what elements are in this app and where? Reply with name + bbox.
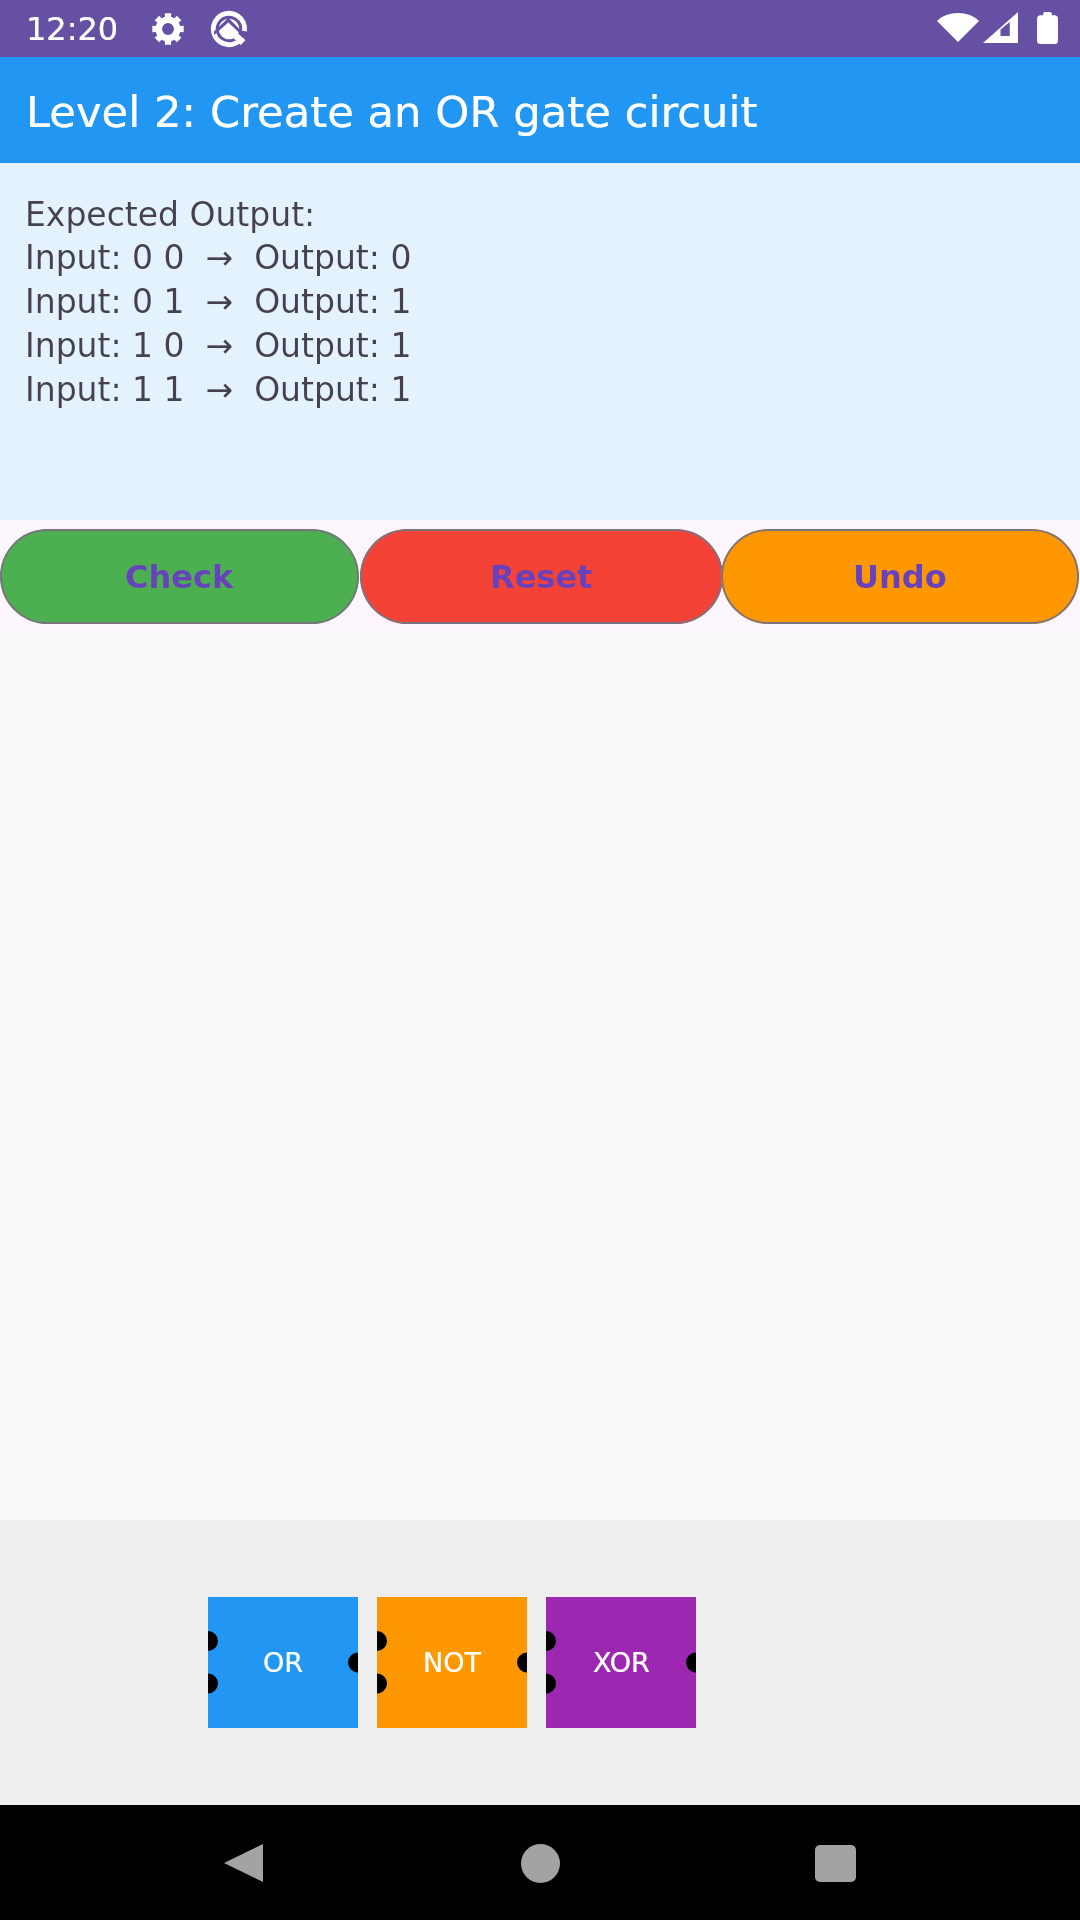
staticText: Reset bbox=[490, 558, 593, 595]
staticText: OR bbox=[263, 1647, 304, 1678]
button[interactable]: Undo bbox=[721, 529, 1079, 624]
button[interactable]: Check bbox=[0, 529, 359, 624]
button[interactable]: Home bbox=[500, 1843, 580, 1883]
button[interactable]: NOT bbox=[377, 1597, 527, 1728]
staticText: Input: 1 1 → Output: 1 bbox=[25, 370, 412, 408]
button[interactable]: OR bbox=[208, 1597, 358, 1728]
staticText: Check bbox=[125, 558, 234, 595]
staticText: NOT bbox=[423, 1647, 481, 1678]
button[interactable]: Recents bbox=[795, 1843, 875, 1883]
staticText: 12:20 bbox=[26, 10, 119, 47]
staticText: Level 2: Create an OR gate circuit bbox=[26, 87, 758, 137]
staticText: Input: 0 1 → Output: 1 bbox=[25, 282, 412, 320]
button[interactable]: Reset bbox=[360, 529, 723, 624]
button[interactable]: XOR bbox=[546, 1597, 696, 1728]
staticText: Expected Output: bbox=[25, 195, 316, 233]
staticText: Input: 0 0 → Output: 0 bbox=[25, 238, 412, 276]
staticText: XOR bbox=[593, 1647, 650, 1678]
button[interactable]: Back bbox=[203, 1843, 283, 1883]
staticText: Undo bbox=[853, 558, 947, 595]
staticText: Input: 1 0 → Output: 1 bbox=[25, 326, 412, 364]
